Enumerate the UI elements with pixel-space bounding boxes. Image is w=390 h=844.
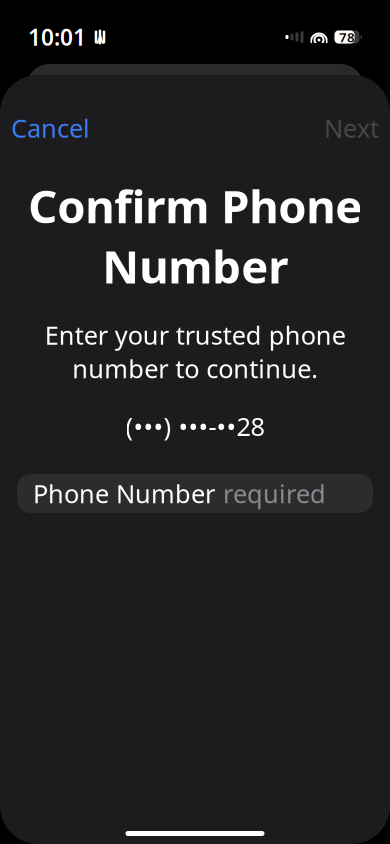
staticText: Cancel bbox=[11, 111, 90, 145]
staticText: Next bbox=[324, 111, 379, 145]
staticText: required bbox=[223, 477, 326, 510]
staticText: 10:01 bbox=[28, 22, 86, 52]
staticText: 78 bbox=[339, 28, 355, 46]
button[interactable]: Phone Number bbox=[17, 474, 373, 513]
button[interactable]: Next bbox=[324, 105, 379, 151]
staticText: A bbox=[96, 32, 103, 47]
staticText: Confirm Phone Number bbox=[28, 176, 362, 296]
button[interactable]: Cancel bbox=[11, 105, 90, 151]
staticText: Enter your trusted phone number to conti… bbox=[44, 318, 345, 385]
staticText: Phone Number bbox=[33, 477, 215, 510]
staticText: (•••) •••-••28 bbox=[125, 409, 264, 443]
